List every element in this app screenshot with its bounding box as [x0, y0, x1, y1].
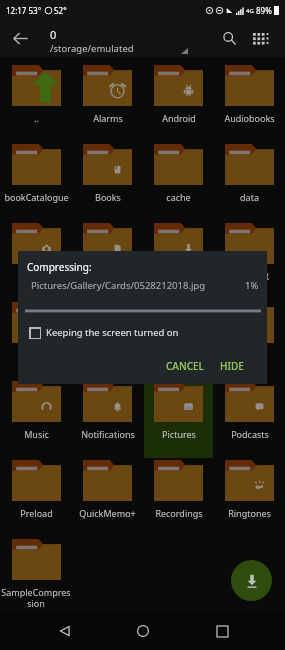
button[interactable]: Recent apps — [203, 612, 241, 650]
staticText: LOST.DIR — [230, 270, 269, 282]
button[interactable]: Android — [144, 63, 213, 142]
staticText: Android — [162, 112, 196, 124]
button[interactable]: Podcasts — [215, 379, 284, 458]
button[interactable]: Download — [144, 221, 213, 300]
button[interactable]: Back — [46, 612, 84, 650]
button[interactable]: Home — [124, 612, 162, 650]
button[interactable]: Music — [1, 379, 71, 458]
button[interactable]: Alarms — [73, 63, 142, 142]
button[interactable]: Download — [231, 560, 272, 601]
button[interactable]: Preload — [1, 458, 71, 537]
button[interactable]: More options — [254, 25, 281, 52]
staticText: Keeping the screen turned on — [46, 326, 179, 339]
button[interactable]: Audiobooks — [215, 63, 284, 142]
button[interactable]: HIDE — [214, 355, 250, 377]
button[interactable]: Notifications — [73, 379, 142, 458]
button[interactable]: QuickMemo+ — [73, 458, 142, 537]
staticText: HIDE — [220, 359, 244, 373]
staticText: Books — [95, 191, 121, 203]
staticText: /storage/emulated — [50, 42, 134, 55]
staticText: data — [240, 191, 259, 203]
button[interactable]: Grid view — [243, 23, 274, 54]
button[interactable]: MIUI — [73, 300, 142, 379]
button[interactable]: Pictures — [144, 379, 213, 458]
staticText: 12:17 53° — [6, 5, 42, 16]
button[interactable]: LOST.DIR — [215, 221, 284, 300]
button[interactable]: Ringtones — [215, 458, 284, 537]
staticText: 52° — [54, 5, 67, 16]
button[interactable]: .. — [1, 63, 71, 142]
button[interactable]: Maps — [144, 300, 213, 379]
staticText: Pictures — [162, 428, 196, 440]
staticText: Preload — [20, 507, 53, 519]
button[interactable]: Movies — [1, 300, 71, 379]
staticText: Compressing: — [27, 260, 92, 274]
staticText: Notifications — [81, 428, 135, 440]
staticText: Audiobooks — [224, 112, 275, 124]
button[interactable]: Search — [213, 22, 246, 55]
button[interactable]: Keeping the screen turned on — [27, 324, 181, 341]
staticText: CANCEL — [166, 359, 204, 373]
staticText: QuickMemo+ — [79, 507, 136, 519]
button[interactable]: CANCEL — [160, 355, 210, 377]
button[interactable]: Books — [73, 142, 142, 221]
button[interactable]: data — [215, 142, 284, 221]
staticText: Alarms — [93, 112, 123, 124]
staticText: bookCatalogue — [4, 191, 69, 203]
staticText: Recordings — [155, 507, 203, 519]
button[interactable]: cache — [144, 142, 213, 221]
button[interactable]: Back — [2, 20, 39, 57]
button[interactable]: Documents — [73, 221, 142, 300]
button[interactable]: SampleCompression — [1, 537, 71, 616]
staticText: Music — [24, 428, 49, 440]
button[interactable]: DCIM — [1, 221, 71, 300]
staticText: .. — [34, 112, 39, 124]
staticText: Documents — [83, 270, 132, 282]
staticText: 1% — [245, 279, 259, 292]
staticText: cache — [166, 191, 191, 203]
staticText: 89% — [256, 5, 272, 16]
button[interactable]: Recordings — [144, 458, 213, 537]
staticText: Podcasts — [231, 428, 269, 440]
button[interactable]: bookCatalogue — [1, 142, 71, 221]
staticText: DCIM — [24, 270, 48, 282]
staticText: 4G — [246, 7, 254, 15]
staticText: 0 — [50, 27, 57, 42]
staticText: Pictures/Gallery/Cards/0528212018.jpg — [31, 279, 206, 292]
staticText: Ringtones — [228, 507, 271, 519]
button[interactable]: Media — [215, 300, 284, 379]
staticText: SampleCompression — [1, 586, 71, 609]
